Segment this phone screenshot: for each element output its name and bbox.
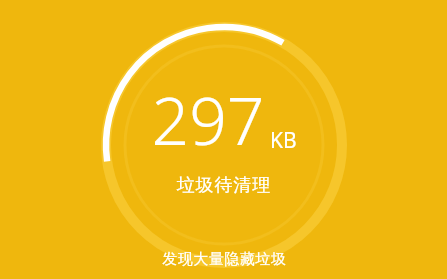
button[interactable]: 发现大量隐藏垃圾 (150, 248, 298, 271)
staticText: 297 (151, 74, 265, 164)
staticText: KB (270, 126, 297, 155)
button[interactable]: Junk scan result (0, 0, 447, 279)
staticText: 垃圾待清理 (176, 174, 271, 197)
